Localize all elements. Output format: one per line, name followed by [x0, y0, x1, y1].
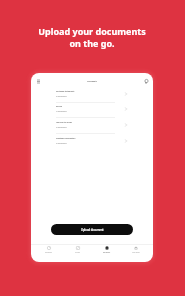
staticText: Documents: [31, 80, 153, 82]
staticText: Documents: [103, 252, 111, 254]
button[interactable]: Dashboard: [34, 244, 63, 258]
staticText: Loan details: [132, 252, 140, 254]
staticText: Mortgage statements: [56, 90, 75, 92]
button[interactable]: Account: [63, 244, 92, 258]
staticText: 7 documents: [56, 110, 67, 112]
staticText: 4 documents: [56, 126, 67, 128]
staticText: Account: [75, 252, 81, 254]
staticText: Additional information: [56, 137, 76, 139]
staticText: Year end tax forms: [56, 121, 72, 123]
button[interactable]: Upload document: [51, 224, 133, 235]
staticText: 3 documents: [56, 95, 67, 97]
staticText: 2 documents: [56, 142, 67, 144]
staticText: Upload your documents on the go.: [38, 25, 146, 50]
button[interactable]: Year end tax forms: [56, 121, 127, 137]
staticText: Dashboard: [45, 252, 52, 254]
button[interactable]: Menu: [34, 77, 43, 86]
button[interactable]: Additional information: [56, 137, 127, 153]
button[interactable]: Loan details: [121, 244, 150, 258]
button[interactable]: Notifications: [142, 77, 151, 86]
staticText: Upload document: [81, 228, 104, 232]
button[interactable]: Escrow: [56, 105, 127, 121]
staticText: Escrow: [56, 105, 62, 107]
button[interactable]: Documents: [92, 244, 121, 258]
button[interactable]: Mortgage statements: [56, 90, 127, 106]
